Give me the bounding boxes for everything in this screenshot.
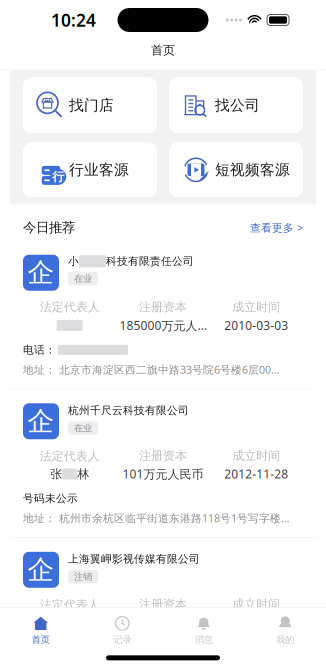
staticText: 今日推荐 [23, 219, 75, 236]
staticText: 注册资本 [139, 300, 187, 314]
staticText: 科技有限责任公司 [106, 255, 194, 268]
staticText: 2012-11-28 [224, 466, 288, 482]
staticText: 成立时间 [232, 597, 280, 611]
staticText: 消息 [195, 634, 213, 645]
staticText: 在业 [74, 273, 92, 284]
button[interactable]: 首页 [0, 608, 81, 650]
staticText: 企 [27, 553, 54, 586]
button[interactable]: 找公司 [169, 77, 303, 133]
button[interactable]: 企 [0, 389, 326, 537]
staticText: 电话： [23, 343, 56, 356]
staticText: 小 [68, 255, 79, 268]
staticText: 法定代表人 [40, 597, 100, 612]
staticText: 成立时间 [232, 448, 280, 463]
staticText: 林 [77, 467, 89, 481]
staticText: 我的 [276, 634, 294, 645]
staticText: 查看更多 > [250, 220, 303, 235]
staticText: 在业 [74, 422, 92, 434]
staticText: 找门店 [69, 96, 114, 114]
staticText: 企 [27, 256, 54, 289]
staticText: 号码未公示 [23, 640, 78, 654]
staticText: 法定代表人 [40, 300, 100, 314]
staticText: 首页 [151, 43, 175, 58]
button[interactable]: 查看更多 > [250, 220, 303, 235]
staticText: 注册资本 [139, 448, 187, 463]
button[interactable]: 企 [0, 538, 326, 669]
staticText: 成立时间 [232, 300, 280, 314]
button[interactable]: 记录 [81, 608, 163, 650]
button[interactable]: 找门店 [23, 77, 157, 133]
staticText: 行业客源 [69, 161, 129, 179]
staticText: 找公司 [215, 96, 260, 114]
staticText: 张 [50, 467, 62, 481]
staticText: 记录 [113, 634, 131, 645]
staticText: 杭州千尺云科技有限公司 [68, 404, 189, 417]
button[interactable]: 我的 [244, 608, 326, 650]
staticText: 上海翼岬影视传媒有限公司 [68, 552, 200, 565]
button[interactable]: 短视频客源 [169, 142, 303, 197]
staticText: 法定代表人 [40, 449, 100, 464]
button[interactable]: 行 [23, 142, 157, 197]
staticText: 2016-05-12 [224, 614, 288, 630]
staticText: 企 [27, 405, 54, 438]
staticText: 地址： 杭州市余杭区临平街道东港路118号1号写字楼… [23, 511, 289, 525]
staticText: 首页 [32, 634, 50, 645]
staticText: 10:24 [51, 8, 96, 31]
button[interactable]: 企 [0, 241, 326, 389]
staticText: 短视频客源 [215, 161, 290, 179]
button[interactable]: 消息 [163, 608, 244, 650]
staticText: 行 [52, 169, 64, 184]
staticText: 101万元人民币 [122, 466, 203, 482]
staticText: 地址： 北京市海淀区西二旗中路33号院6号楼6层00… [23, 362, 279, 377]
staticText: 185000万元人… [119, 317, 206, 333]
staticText: 地址： 上海市浦东新区张江镇科苑路88号3号楼… [23, 660, 261, 669]
staticText: 注销 [74, 571, 92, 582]
staticText: 号码未公示 [23, 492, 78, 505]
staticText: 2010-03-03 [224, 317, 288, 333]
staticText: 500万元人民币 [122, 614, 203, 630]
staticText: 注册资本 [139, 597, 187, 611]
